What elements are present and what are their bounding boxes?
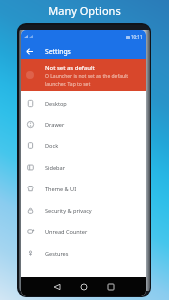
staticText: Settings: [45, 47, 71, 56]
button[interactable]: Recents: [103, 279, 119, 295]
staticText: O Launcher is not set as the default lau…: [45, 73, 129, 87]
staticText: Not set as default: [45, 64, 95, 72]
button[interactable]: Not set as default: [21, 59, 146, 91]
button[interactable]: Home: [76, 279, 92, 295]
button[interactable]: Dock: [21, 135, 146, 156]
staticText: Security & privacy: [45, 207, 92, 215]
staticText: Dock: [45, 142, 59, 150]
staticText: 10:11: [131, 34, 143, 40]
button[interactable]: Unread Counter: [21, 221, 146, 242]
staticText: Sidebar: [45, 164, 65, 172]
staticText: Drawer: [45, 121, 65, 129]
button[interactable]: Sidebar: [21, 157, 146, 178]
staticText: Desktop: [45, 100, 67, 108]
button[interactable]: Drawer: [21, 114, 146, 135]
staticText: Many Options: [0, 3, 169, 18]
button[interactable]: Desktop: [21, 93, 146, 114]
staticText: Unread Counter: [45, 228, 88, 236]
staticText: Gestures: [45, 250, 69, 258]
staticText: Theme & UI: [45, 185, 77, 193]
button[interactable]: Security & privacy: [21, 200, 146, 221]
button[interactable]: Back: [21, 43, 37, 59]
button[interactable]: Back: [49, 279, 65, 295]
button[interactable]: Gestures: [21, 243, 146, 264]
button[interactable]: Theme & UI: [21, 178, 146, 199]
